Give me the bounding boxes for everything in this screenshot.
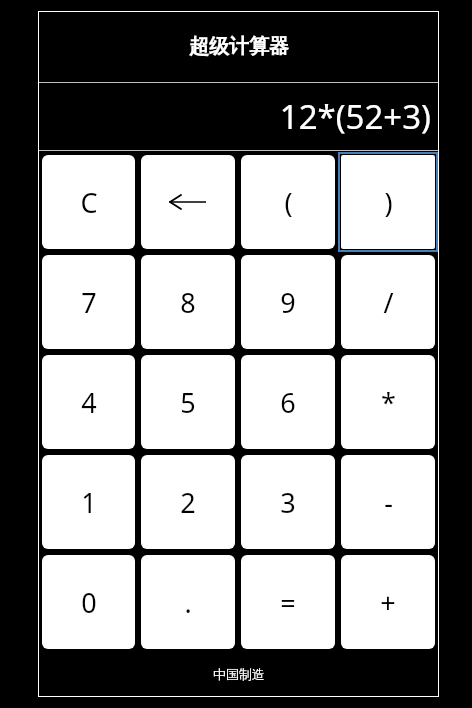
button[interactable]: + bbox=[341, 555, 435, 649]
staticText: . bbox=[184, 584, 192, 621]
button[interactable]: 12*(52+3) bbox=[38, 83, 439, 150]
staticText: C bbox=[80, 184, 98, 221]
staticText: 超级计算器 bbox=[189, 34, 289, 59]
button[interactable]: * bbox=[341, 355, 435, 449]
button[interactable]: / bbox=[341, 255, 435, 349]
staticText: 9 bbox=[280, 284, 296, 321]
staticText: 0 bbox=[81, 584, 97, 621]
button[interactable]: 3 bbox=[241, 455, 335, 549]
staticText: 2 bbox=[180, 484, 196, 521]
button[interactable]: . bbox=[141, 555, 235, 649]
button[interactable]: 0 bbox=[42, 555, 135, 649]
button[interactable]: ( bbox=[241, 155, 335, 249]
button[interactable]: 1 bbox=[42, 455, 135, 549]
staticText: = bbox=[280, 584, 296, 621]
button[interactable]: 9 bbox=[241, 255, 335, 349]
button[interactable]: = bbox=[241, 555, 335, 649]
staticText: * bbox=[381, 384, 396, 421]
staticText: 6 bbox=[280, 384, 296, 421]
staticText: ) bbox=[384, 184, 393, 221]
button[interactable]: 5 bbox=[141, 355, 235, 449]
staticText: 1 bbox=[81, 484, 97, 521]
staticText: 8 bbox=[180, 284, 196, 321]
button[interactable]: Backspace bbox=[141, 155, 235, 249]
staticText: - bbox=[384, 484, 393, 521]
button[interactable]: 8 bbox=[141, 255, 235, 349]
staticText: + bbox=[380, 584, 396, 621]
staticText: 5 bbox=[180, 384, 196, 421]
staticText: 12*(52+3) bbox=[279, 94, 431, 139]
button[interactable]: - bbox=[341, 455, 435, 549]
staticText: ( bbox=[284, 184, 293, 221]
button[interactable]: 2 bbox=[141, 455, 235, 549]
button[interactable]: 7 bbox=[42, 255, 135, 349]
staticText: 7 bbox=[81, 284, 97, 321]
button[interactable]: 6 bbox=[241, 355, 335, 449]
staticText: 4 bbox=[81, 384, 97, 421]
staticText: 3 bbox=[280, 484, 296, 521]
button[interactable]: ) bbox=[341, 155, 435, 249]
staticText: 中国制造 bbox=[213, 666, 265, 682]
button[interactable]: C bbox=[42, 155, 135, 249]
button[interactable]: 4 bbox=[42, 355, 135, 449]
staticText: / bbox=[383, 284, 394, 321]
